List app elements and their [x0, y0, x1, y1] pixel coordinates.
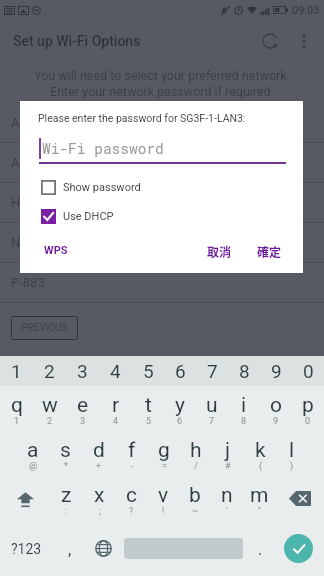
button[interactable]: 7 [196, 356, 228, 386]
staticText: g [158, 438, 170, 463]
button[interactable]: n [211, 476, 243, 521]
button[interactable]: PREVIOUS [11, 316, 78, 340]
button[interactable]: t [132, 386, 164, 431]
button[interactable]: o [260, 386, 292, 431]
button[interactable]: Show password [39, 178, 143, 197]
staticText: ) [290, 461, 294, 472]
button[interactable]: h [180, 431, 212, 476]
button[interactable]: 8 [228, 356, 260, 386]
button[interactable]: HOME [0, 183, 324, 222]
staticText: 09:03 [292, 4, 320, 17]
staticText: ?123 [11, 541, 42, 557]
button[interactable]: Change language [87, 521, 119, 576]
staticText: 0 [303, 360, 314, 382]
staticText: u [206, 393, 218, 418]
button[interactable]: Enter [273, 521, 324, 576]
staticText: Wi-Fi password [42, 139, 164, 158]
button[interactable]: 9 [260, 356, 292, 386]
staticText: NET [11, 235, 36, 250]
button[interactable]: AP-2 [0, 143, 324, 182]
button[interactable]: , [52, 521, 87, 576]
button[interactable]: e [66, 386, 99, 431]
button[interactable]: y [164, 386, 196, 431]
staticText: 1 [11, 360, 22, 382]
button[interactable]: Shift [0, 476, 50, 521]
staticText: a [27, 438, 39, 463]
button[interactable]: l [276, 431, 308, 476]
staticText: 0 [305, 416, 311, 427]
button[interactable]: a [16, 431, 49, 476]
staticText: b [189, 483, 201, 508]
button[interactable]: . [247, 521, 273, 576]
staticText: ' [226, 506, 228, 517]
staticText: h [190, 438, 202, 463]
staticText: q [11, 393, 23, 418]
staticText: 取消 [207, 243, 232, 260]
staticText: w [42, 393, 58, 418]
button[interactable]: w [33, 386, 66, 431]
button[interactable]: Refresh [252, 23, 288, 59]
button[interactable]: g [148, 431, 180, 476]
staticText: 確定 [257, 243, 282, 260]
button[interactable]: P-883 [0, 263, 324, 302]
staticText: m [250, 483, 269, 508]
button[interactable]: f [115, 431, 148, 476]
staticText: 7 [209, 416, 215, 427]
staticText: l [289, 438, 295, 463]
button[interactable]: r [99, 386, 132, 431]
button[interactable]: 4 [99, 356, 132, 386]
staticText: ( [259, 461, 263, 472]
staticText: 6 [177, 416, 183, 427]
staticText: y [175, 393, 185, 418]
button[interactable]: AP-1 [0, 103, 324, 142]
button[interactable]: 確定 [253, 239, 286, 264]
staticText: n [221, 483, 233, 508]
staticText: - [131, 461, 134, 472]
button[interactable]: More options [288, 25, 320, 57]
staticText: j [225, 438, 231, 463]
staticText: AP-2 [11, 155, 39, 170]
staticText: i [241, 393, 247, 418]
button[interactable]: Backspace [275, 476, 324, 521]
button[interactable]: WPS [40, 240, 72, 261]
button[interactable]: Use DHCP [39, 207, 116, 226]
button[interactable]: 0 [292, 356, 324, 386]
button[interactable]: x [83, 476, 115, 521]
button[interactable]: z [50, 476, 83, 521]
button[interactable]: i [228, 386, 260, 431]
staticText: = [162, 461, 167, 472]
button[interactable]: q [0, 386, 33, 431]
button[interactable]: 1 [0, 356, 33, 386]
button[interactable]: d [82, 431, 115, 476]
staticText: / [194, 461, 198, 472]
button[interactable]: c [115, 476, 147, 521]
staticText: @ [29, 461, 38, 472]
staticText: t [145, 393, 152, 418]
button[interactable]: 取消 [203, 239, 236, 264]
staticText: ? [129, 506, 134, 517]
staticText: 5 [143, 360, 154, 382]
staticText: Show password [63, 181, 141, 194]
button[interactable]: ?123 [0, 521, 52, 576]
staticText: 4 [110, 360, 121, 382]
button[interactable]: 2 [33, 356, 66, 386]
button[interactable] [119, 521, 247, 576]
button[interactable]: k [244, 431, 276, 476]
button[interactable]: v [147, 476, 179, 521]
button[interactable]: 3 [66, 356, 99, 386]
staticText: Please enter the password for SG3F-1-LAN… [38, 112, 246, 124]
staticText: 1 [14, 416, 20, 427]
button[interactable]: m [243, 476, 275, 521]
button[interactable]: b [179, 476, 211, 521]
staticText: 5 [146, 416, 152, 427]
staticText: o [270, 393, 282, 418]
button[interactable]: 5 [132, 356, 164, 386]
button[interactable]: u [196, 386, 228, 431]
button[interactable]: j [212, 431, 244, 476]
button[interactable]: NET [0, 223, 324, 262]
button[interactable]: 6 [164, 356, 196, 386]
staticText: Use DHCP [63, 210, 114, 223]
button[interactable]: s [49, 431, 82, 476]
staticText: . [258, 539, 263, 559]
button[interactable]: p [292, 386, 324, 431]
